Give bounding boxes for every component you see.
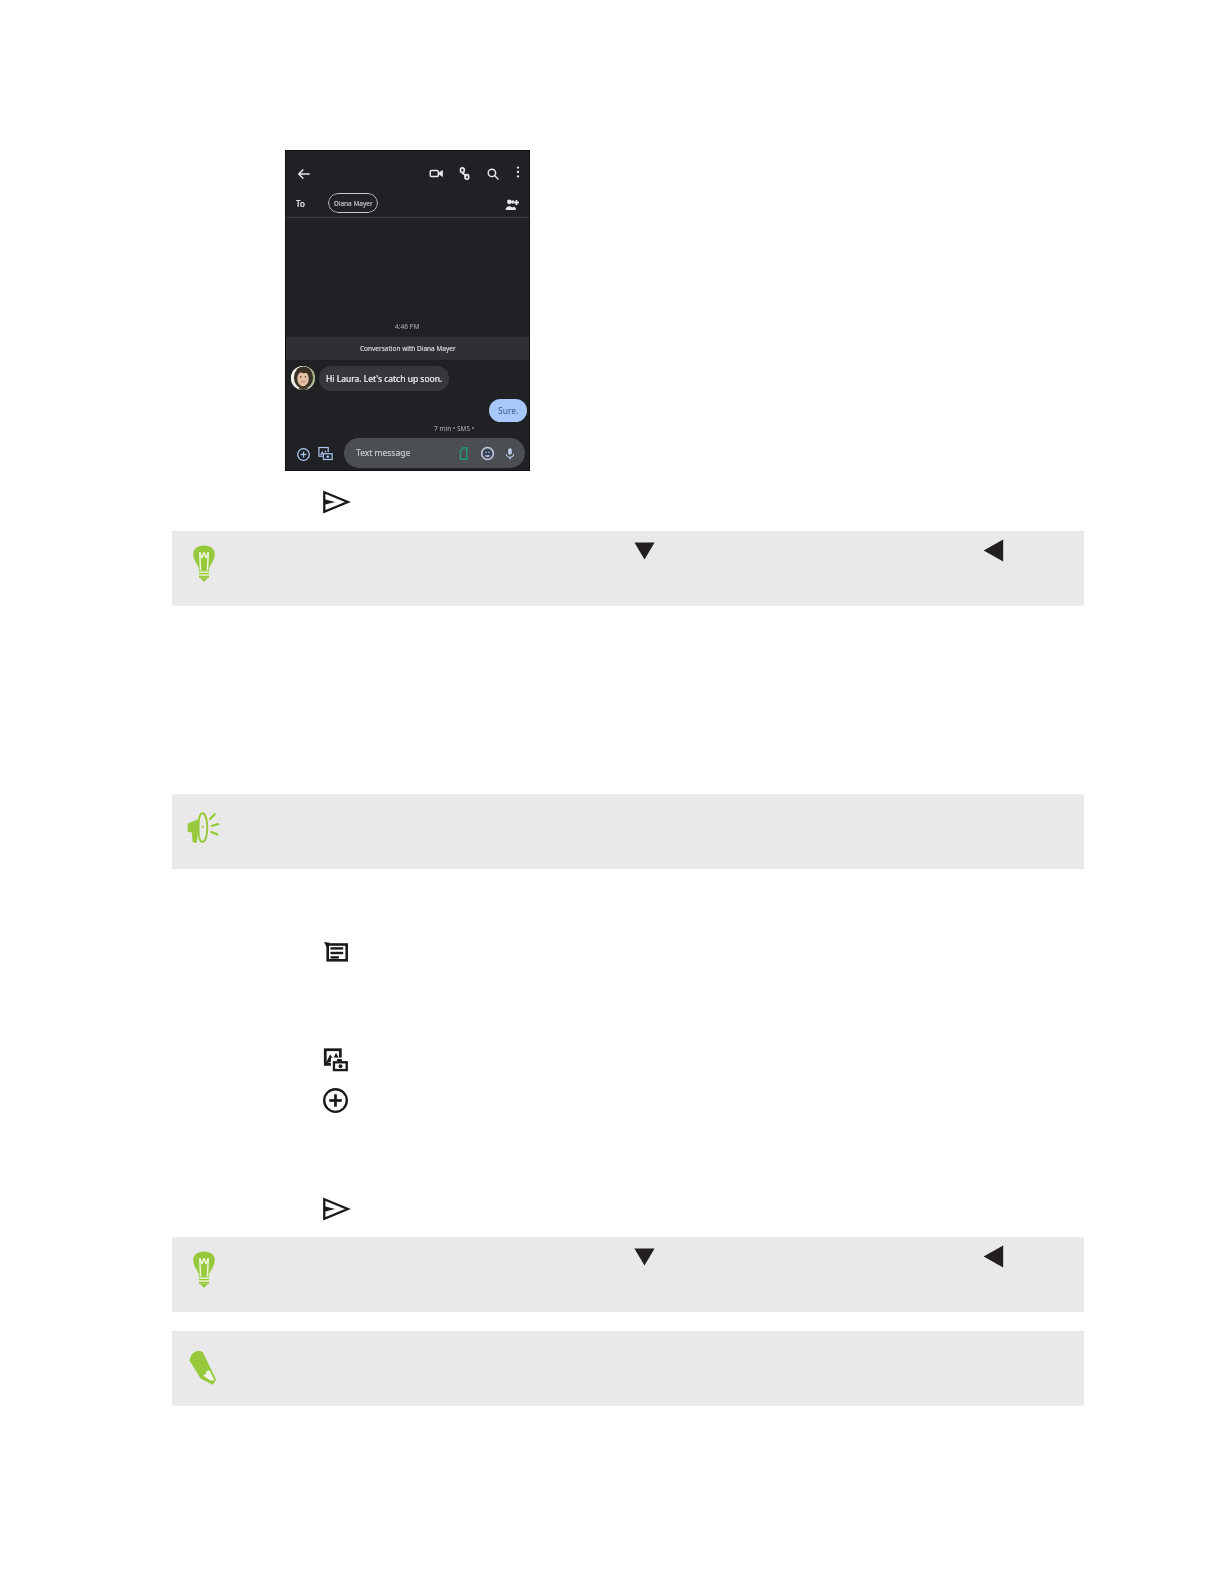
button[interactable]: Sure. bbox=[489, 399, 527, 422]
staticText: 7 min • SMS • bbox=[434, 424, 475, 433]
staticText: Text message bbox=[356, 447, 411, 459]
staticText: To bbox=[296, 198, 305, 209]
button[interactable]: Add attachment bbox=[294, 445, 312, 463]
button[interactable]: More options bbox=[509, 163, 527, 181]
button[interactable]: Attach photo bbox=[322, 1044, 349, 1073]
button[interactable]: Text message bbox=[344, 438, 525, 468]
button[interactable]: Send image bbox=[316, 444, 334, 462]
button[interactable]: Send bbox=[323, 491, 349, 513]
button[interactable]: Messages bbox=[324, 942, 348, 962]
button[interactable]: Back bbox=[293, 163, 314, 184]
button[interactable]: Add people bbox=[503, 195, 521, 213]
button[interactable]: Diana Mayer bbox=[328, 193, 378, 213]
staticText: Diana Mayer bbox=[334, 199, 373, 208]
button[interactable]: Search bbox=[482, 163, 503, 184]
staticText: Hi Laura. Let's catch up soon. bbox=[326, 373, 443, 385]
button[interactable]: Video call bbox=[426, 163, 447, 184]
staticText: 4:46 PM bbox=[395, 322, 420, 331]
button[interactable]: Add bbox=[323, 1088, 348, 1113]
button[interactable]: Call bbox=[454, 163, 475, 184]
staticText: Conversation with Diana Mayer bbox=[360, 344, 456, 353]
staticText: Sure. bbox=[498, 405, 519, 417]
button[interactable]: Send bbox=[323, 1198, 349, 1220]
button[interactable]: Hi Laura. Let's catch up soon. bbox=[319, 366, 449, 391]
